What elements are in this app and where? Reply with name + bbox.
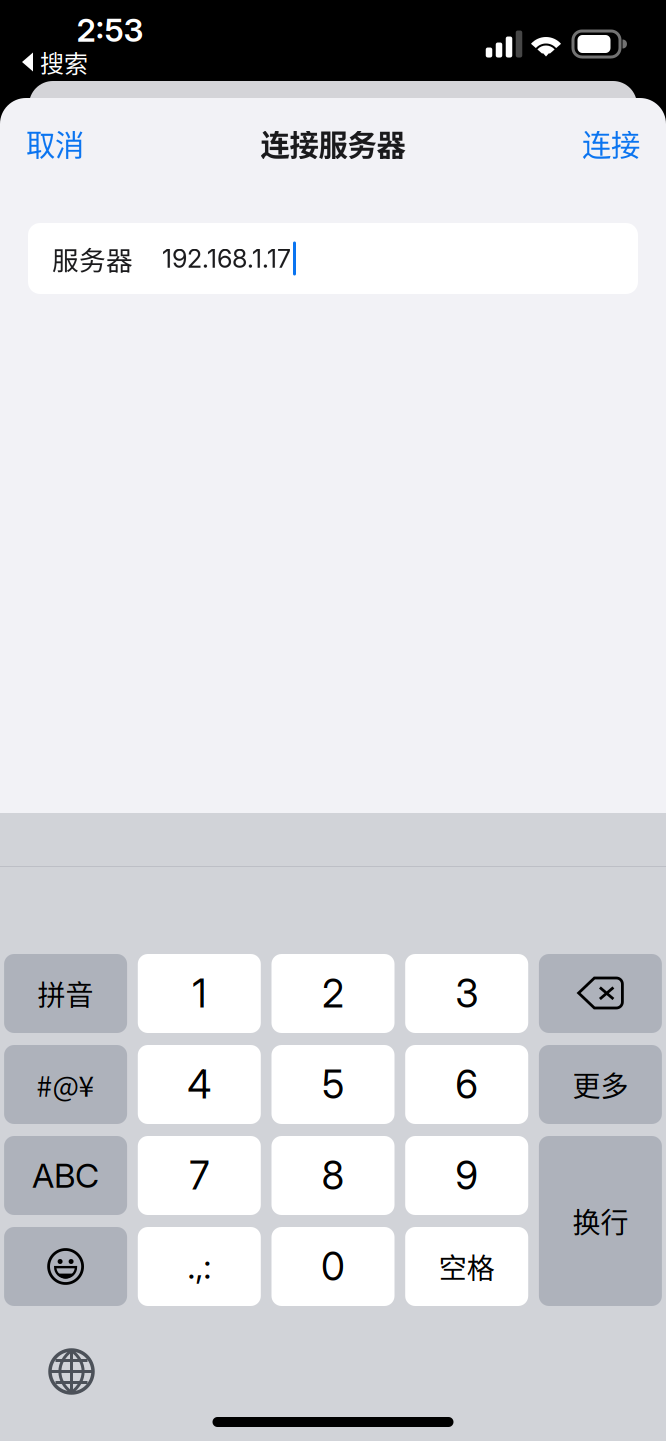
- button[interactable]: 换行: [539, 1136, 662, 1306]
- staticText: 4: [187, 1061, 211, 1108]
- button[interactable]: 拼音: [4, 954, 127, 1033]
- button[interactable]: 3: [405, 954, 528, 1033]
- staticText: 1: [192, 970, 206, 1017]
- button[interactable]: 服务器: [28, 223, 638, 294]
- staticText: 连接: [582, 122, 640, 164]
- staticText: 2: [322, 970, 344, 1017]
- staticText: 连接服务器: [260, 122, 405, 164]
- staticText: 拼音: [38, 973, 94, 1014]
- staticText: 3: [455, 970, 478, 1017]
- button[interactable]: 取消: [0, 98, 110, 182]
- button[interactable]: 5: [271, 1045, 394, 1124]
- staticText: 搜索: [40, 45, 88, 79]
- button[interactable]: [4, 1227, 127, 1306]
- button[interactable]: 更多: [539, 1045, 662, 1124]
- staticText: 8: [321, 1152, 344, 1199]
- button[interactable]: 7: [138, 1136, 261, 1215]
- staticText: .,:: [187, 1246, 211, 1287]
- staticText: 5: [322, 1061, 344, 1108]
- staticText: 服务器: [52, 239, 133, 278]
- staticText: 2:53: [76, 11, 143, 49]
- button[interactable]: 0: [271, 1227, 394, 1306]
- button[interactable]: 空格: [405, 1227, 528, 1306]
- staticText: 更多: [572, 1064, 628, 1105]
- button[interactable]: 4: [138, 1045, 261, 1124]
- button[interactable]: 9: [405, 1136, 528, 1215]
- staticText: 7: [189, 1152, 209, 1199]
- staticText: 6: [455, 1061, 478, 1108]
- button[interactable]: .,:: [138, 1227, 261, 1306]
- staticText: #@¥: [37, 1064, 95, 1105]
- staticText: 空格: [439, 1246, 495, 1287]
- button[interactable]: 搜索: [0, 46, 666, 78]
- button[interactable]: ABC: [4, 1136, 127, 1215]
- button[interactable]: [539, 954, 662, 1033]
- staticText: 0: [321, 1243, 345, 1290]
- button[interactable]: #@¥: [4, 1045, 127, 1124]
- button[interactable]: 1: [138, 954, 261, 1033]
- staticText: 9: [455, 1152, 478, 1199]
- staticText: 192.168.1.17: [162, 243, 291, 274]
- staticText: 换行: [572, 1201, 628, 1241]
- button[interactable]: 切换键盘: [37, 1337, 106, 1406]
- button[interactable]: 连接: [556, 98, 666, 182]
- staticText: ABC: [32, 1155, 99, 1196]
- staticText: 取消: [26, 122, 84, 164]
- button[interactable]: 6: [405, 1045, 528, 1124]
- button[interactable]: 8: [271, 1136, 394, 1215]
- button[interactable]: 2: [271, 954, 394, 1033]
